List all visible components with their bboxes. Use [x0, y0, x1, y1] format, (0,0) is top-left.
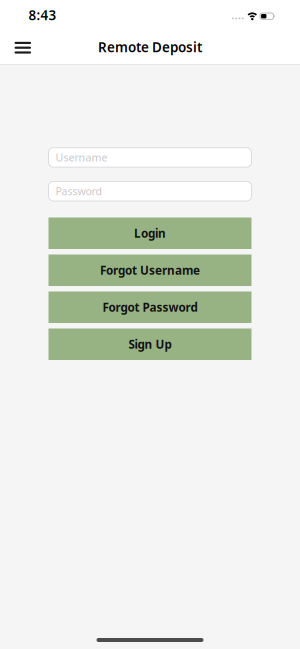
- staticText: Remote Deposit: [98, 38, 202, 56]
- button[interactable]: Password: [48, 181, 251, 201]
- button[interactable]: Login: [48, 217, 251, 249]
- button[interactable]: Forgot Password: [48, 291, 251, 323]
- button[interactable]: Forgot Username: [48, 254, 251, 286]
- button[interactable]: Sign Up: [48, 328, 251, 360]
- button[interactable]: Username: [48, 148, 251, 167]
- staticText: Password: [55, 184, 102, 198]
- button[interactable]: Menu: [9, 36, 37, 60]
- staticText: Username: [55, 150, 107, 164]
- staticText: Login: [134, 225, 166, 241]
- staticText: 8:43: [28, 6, 56, 24]
- staticText: Forgot Password: [102, 299, 197, 315]
- staticText: Sign Up: [128, 336, 171, 352]
- staticText: Forgot Username: [100, 262, 200, 278]
